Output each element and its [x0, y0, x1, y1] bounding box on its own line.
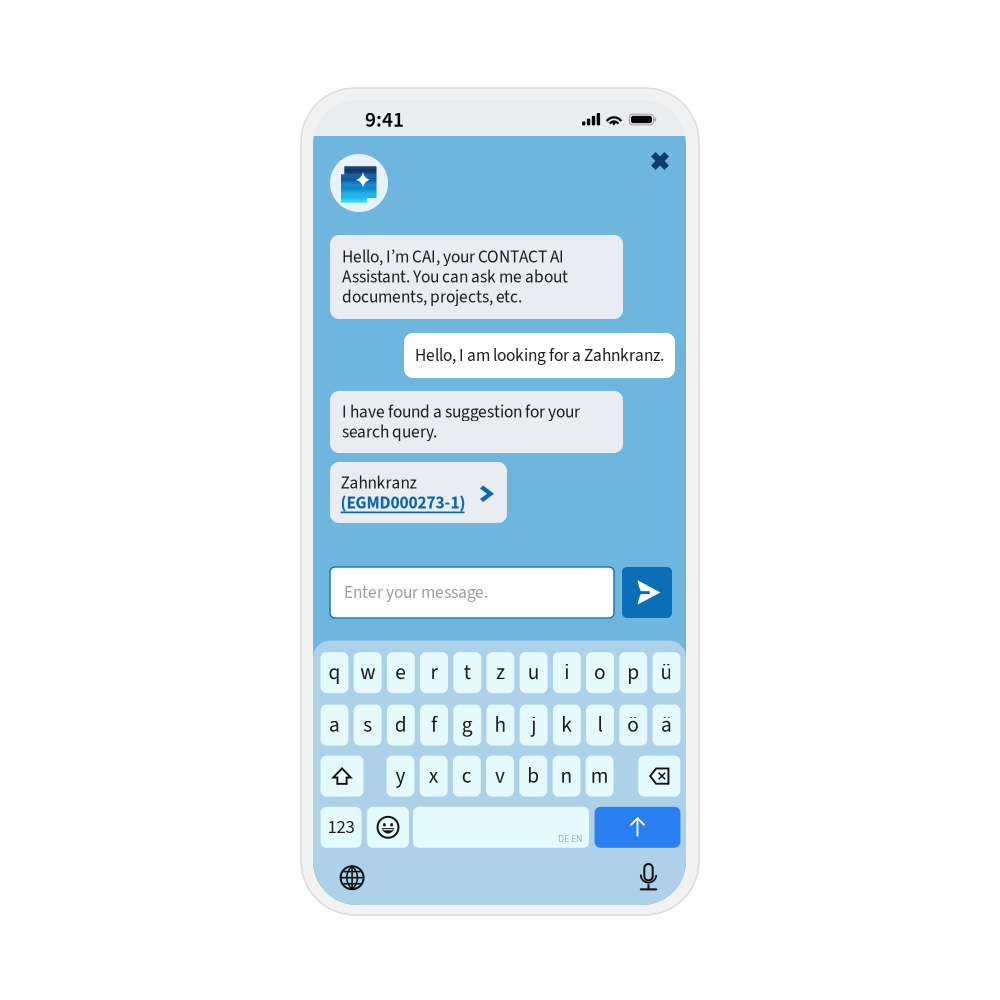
staticText: I have found a suggestion for your searc… [342, 402, 580, 442]
staticText: l [598, 710, 603, 740]
button[interactable]: f [420, 705, 448, 746]
button[interactable]: d [387, 705, 415, 746]
button[interactable]: Zahnkranz [330, 462, 507, 523]
staticText: h [494, 710, 506, 740]
staticText: n [560, 761, 572, 791]
button[interactable]: t [453, 652, 481, 693]
staticText: ü [660, 657, 672, 688]
staticText: f [431, 710, 437, 740]
button[interactable]: x [420, 756, 448, 797]
staticText: (EGMD000273-1) [341, 493, 466, 513]
button[interactable]: g [453, 705, 481, 746]
staticText: g [462, 710, 473, 740]
staticText: c [462, 761, 472, 791]
button[interactable]: Dictation [640, 864, 657, 891]
button[interactable]: q [320, 652, 348, 693]
button[interactable]: Shift [320, 756, 363, 797]
staticText: Zahnkranz [341, 473, 417, 493]
staticText: q [328, 657, 340, 688]
staticText: m [591, 761, 609, 791]
staticText: Hello, I’m CAI, your CONTACT AI Assistan… [342, 247, 568, 307]
staticText: p [627, 657, 639, 688]
button[interactable]: Close [651, 152, 669, 170]
staticText: ö [627, 710, 639, 740]
button[interactable]: a [320, 705, 348, 746]
button[interactable]: s [354, 705, 382, 746]
staticText: i [564, 657, 569, 688]
staticText: y [395, 761, 405, 791]
staticText: Enter your message. [344, 582, 488, 602]
staticText: x [429, 761, 439, 791]
staticText: Hello, I am looking for a Zahnkranz. [415, 345, 664, 365]
button[interactable]: Emoji [367, 807, 409, 848]
staticText: a [329, 710, 340, 740]
staticText: s [363, 710, 372, 740]
staticText: w [360, 657, 375, 688]
button[interactable]: r [420, 652, 448, 693]
staticText: b [527, 761, 539, 791]
button[interactable]: o [586, 652, 614, 693]
staticText: k [561, 710, 572, 740]
button[interactable]: l [586, 705, 614, 746]
button[interactable]: ü [652, 652, 680, 693]
staticText: u [528, 657, 540, 688]
button[interactable]: v [486, 756, 514, 797]
button[interactable]: h [486, 705, 514, 746]
button[interactable]: ö [619, 705, 647, 746]
staticText: 123 [327, 814, 354, 841]
button[interactable]: Enter your message. [330, 567, 614, 618]
button[interactable]: j [520, 705, 548, 746]
staticText: 9:41 [365, 105, 404, 135]
staticText: z [496, 657, 505, 688]
staticText: e [395, 657, 406, 688]
staticText: t [464, 657, 471, 688]
button[interactable]: Switch keyboard [340, 865, 365, 890]
button[interactable]: ä [652, 705, 680, 746]
button[interactable]: y [386, 756, 414, 797]
button[interactable]: z [486, 652, 514, 693]
button[interactable]: n [552, 756, 580, 797]
button[interactable]: 123 [320, 807, 361, 848]
button[interactable]: e [387, 652, 415, 693]
staticText: v [495, 761, 505, 791]
button[interactable]: w [354, 652, 382, 693]
staticText: d [395, 710, 407, 740]
button[interactable]: i [553, 652, 581, 693]
button[interactable]: Send [622, 567, 672, 618]
button[interactable]: p [619, 652, 647, 693]
staticText: j [531, 710, 536, 740]
staticText: o [594, 657, 606, 688]
button[interactable]: c [453, 756, 481, 797]
button[interactable]: k [553, 705, 581, 746]
staticText: ä [661, 710, 672, 740]
button[interactable]: Delete [638, 756, 680, 797]
staticText: r [431, 657, 438, 688]
staticText: DE EN [558, 832, 582, 846]
button[interactable]: b [519, 756, 547, 797]
button[interactable]: m [586, 756, 614, 797]
button[interactable]: Return [595, 807, 680, 848]
button[interactable]: u [520, 652, 548, 693]
button[interactable]: Space [413, 807, 589, 848]
